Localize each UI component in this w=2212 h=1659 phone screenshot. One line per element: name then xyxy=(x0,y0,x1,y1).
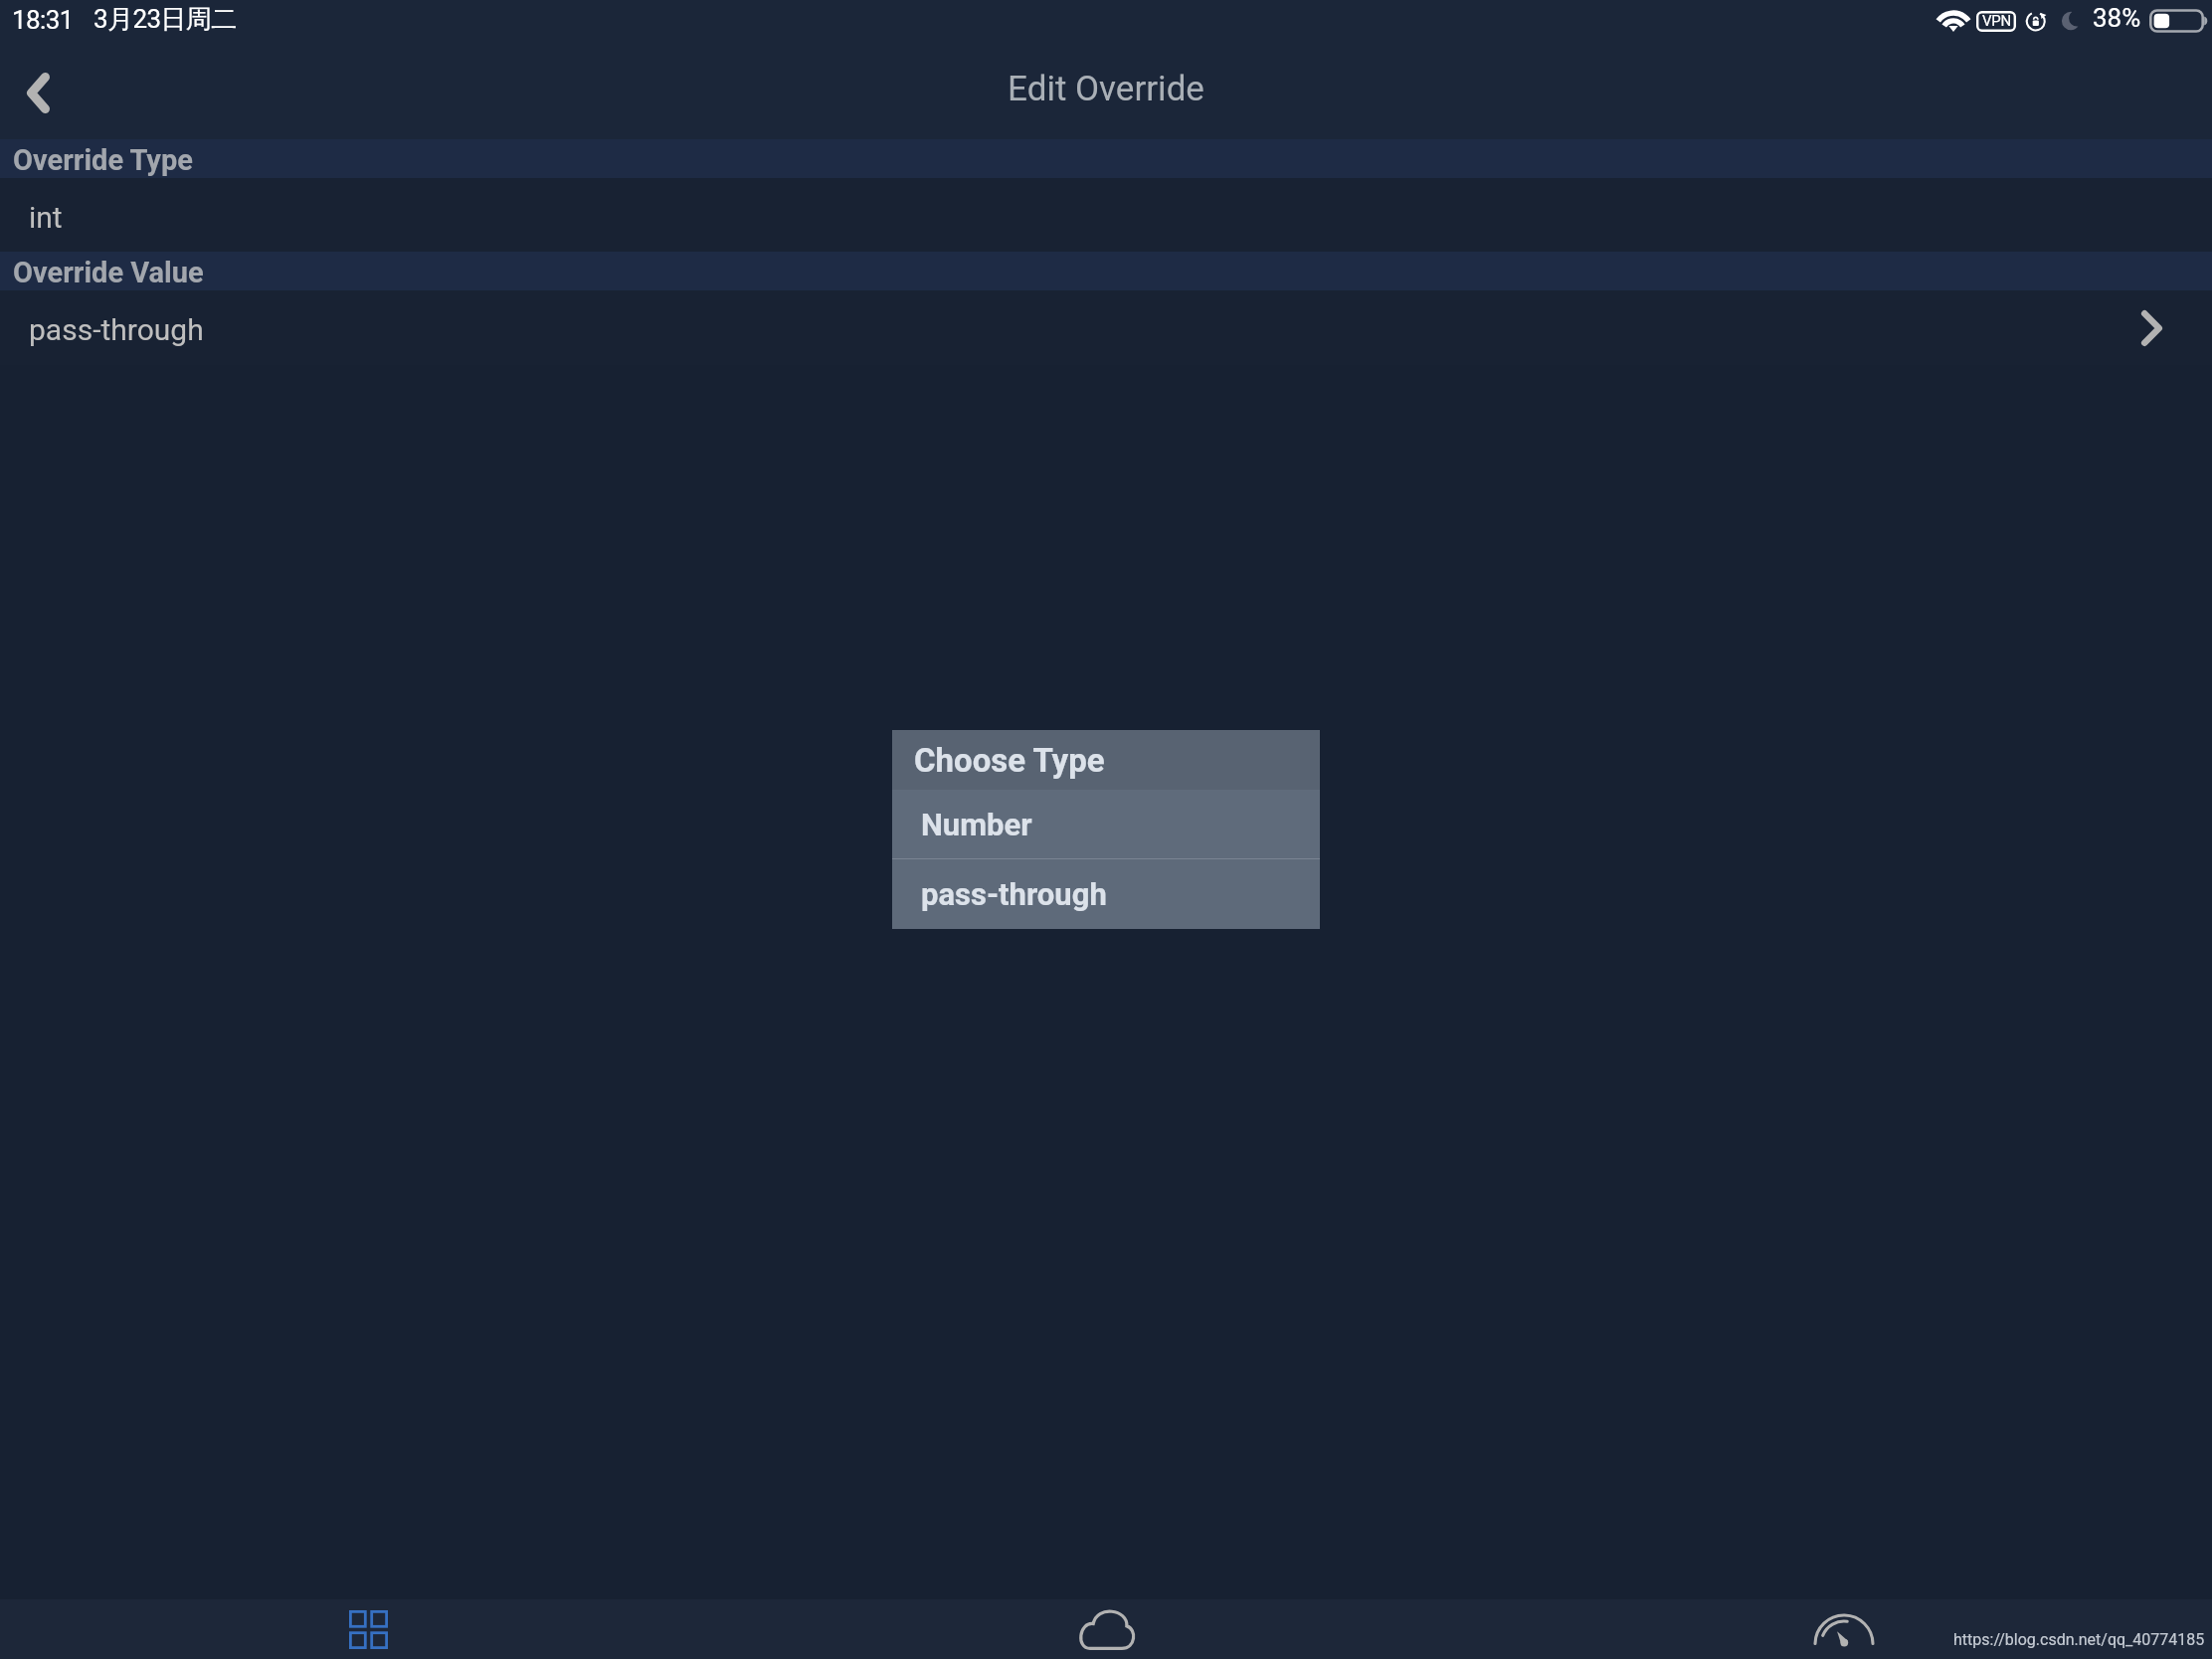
staticText: Number xyxy=(921,807,1032,842)
staticText: VPN xyxy=(1982,12,2011,30)
staticText: int xyxy=(29,200,63,235)
staticText: 38% xyxy=(2093,3,2141,33)
button[interactable]: Home xyxy=(1069,1601,1143,1657)
staticText: Edit Override xyxy=(1008,69,1204,109)
button[interactable]: int xyxy=(0,178,2212,252)
staticText: pass-through xyxy=(29,312,204,347)
button[interactable]: pass-through xyxy=(0,290,2212,365)
staticText: Choose Type xyxy=(914,741,1105,780)
button[interactable]: Back xyxy=(0,48,76,137)
button[interactable]: Number xyxy=(892,790,1320,858)
staticText: 18:31 xyxy=(12,5,74,35)
button[interactable]: Performance xyxy=(1810,1599,1878,1659)
staticText: https://blog.csdn.net/qq_40774185 xyxy=(1953,1630,2205,1649)
staticText: Override Type xyxy=(13,143,193,177)
staticText: Override Value xyxy=(13,256,204,289)
button[interactable]: Recent apps xyxy=(338,1599,399,1659)
staticText: 3月23日周二 xyxy=(93,3,237,36)
staticText: pass-through xyxy=(921,876,1107,912)
button[interactable]: pass-through xyxy=(892,859,1320,929)
